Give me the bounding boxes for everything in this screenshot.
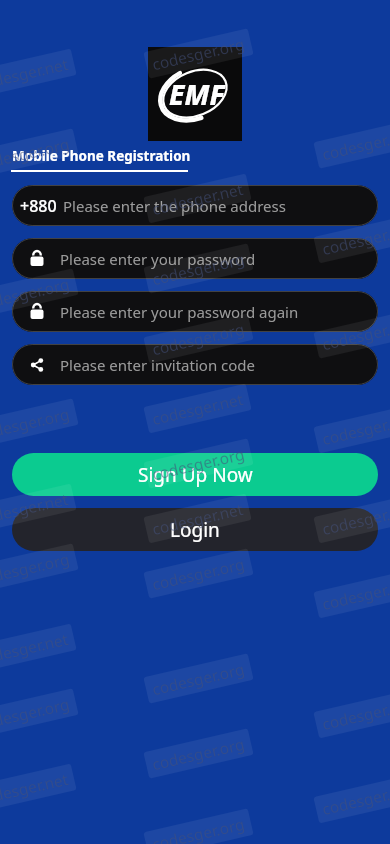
staticText: EMF xyxy=(169,75,225,113)
staticText: Please enter invitation code xyxy=(60,355,256,375)
staticText: Sign Up Now xyxy=(138,462,253,488)
button[interactable]: Login xyxy=(12,508,378,551)
staticText: codesger.org xyxy=(320,313,390,354)
staticText: Mobile Phone Registration xyxy=(12,147,191,165)
staticText: codesger.org xyxy=(150,248,247,289)
button[interactable]: Please enter invitation code xyxy=(12,344,378,385)
staticText: codesger.org xyxy=(0,403,72,444)
staticText: codesger.net xyxy=(0,628,70,669)
staticText: codesger.org xyxy=(0,693,72,734)
staticText: codesger.org xyxy=(0,133,72,174)
staticText: codesger.net xyxy=(150,498,245,539)
staticText: codesger.org xyxy=(150,733,247,774)
staticText: codesger.org xyxy=(150,553,247,594)
staticText: codesger.org xyxy=(150,318,247,359)
staticText: codesger.net xyxy=(320,778,390,819)
staticText: codesger.net xyxy=(0,53,70,94)
staticText: codesger.net xyxy=(150,178,245,219)
staticText: codesger.net xyxy=(320,573,390,614)
staticText: codesger.org xyxy=(0,548,72,589)
button[interactable]: Sign Up Now xyxy=(12,453,378,496)
staticText: Login xyxy=(170,517,220,543)
staticText: codesger.net xyxy=(320,498,390,539)
staticText: codesger.net xyxy=(320,408,390,449)
staticText: codesger.net xyxy=(0,488,70,529)
staticText: codesger.org xyxy=(150,33,247,74)
staticText: +880 xyxy=(20,195,57,217)
staticText: codesger.net xyxy=(320,218,390,259)
button[interactable]: Please enter your password again xyxy=(12,291,378,332)
staticText: Please enter the phone address xyxy=(63,196,286,216)
staticText: codesger.org xyxy=(0,273,72,314)
staticText: codesger.net xyxy=(0,768,70,809)
staticText: codesger.net xyxy=(320,693,390,734)
button[interactable]: +880 xyxy=(12,185,378,226)
staticText: codesger.org xyxy=(320,123,390,164)
staticText: Please enter your password xyxy=(60,249,256,269)
button[interactable]: Please enter your password xyxy=(12,238,378,279)
staticText: codesger.org xyxy=(150,658,247,699)
staticText: Please enter your password again xyxy=(60,302,299,322)
staticText: codesger.org xyxy=(150,443,247,484)
staticText: codesger.org xyxy=(150,813,247,844)
staticText: codesger.net xyxy=(150,388,245,429)
